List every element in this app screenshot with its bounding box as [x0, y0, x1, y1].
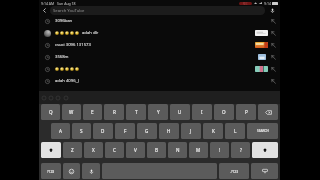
button[interactable]: W	[62, 104, 81, 120]
button[interactable]: Keyboard toolbar item	[47, 91, 54, 104]
staticText: SEARCH	[257, 129, 269, 133]
staticText: P	[245, 109, 248, 115]
button[interactable]: N	[168, 142, 187, 158]
button[interactable]: adah dlr	[39, 27, 280, 39]
staticText: ?123	[47, 169, 55, 174]
button[interactable]: .?123	[219, 163, 249, 179]
staticText: H	[167, 128, 171, 134]
button[interactable]: P	[236, 104, 256, 120]
button[interactable]: !	[210, 142, 229, 158]
staticText: S	[80, 128, 83, 134]
button[interactable]: Emoji	[63, 163, 80, 179]
button[interactable]: I	[192, 104, 212, 120]
staticText: .?123	[230, 169, 239, 174]
staticText: K	[212, 128, 215, 134]
staticText: !	[219, 147, 221, 153]
button[interactable]: Caps lock	[252, 142, 278, 158]
staticText: I	[201, 109, 203, 115]
button[interactable]: J	[181, 123, 201, 139]
staticText: 9:14	[264, 1, 271, 6]
button[interactable]: Search YouTube	[50, 6, 265, 15]
button[interactable]: S	[72, 123, 91, 139]
button[interactable]: M	[189, 142, 208, 158]
button[interactable]: 3096ban	[39, 15, 280, 27]
button[interactable]: Backspace	[258, 104, 278, 120]
button[interactable]: B	[147, 142, 166, 158]
button[interactable]: Screen recording	[239, 2, 252, 5]
staticText: A	[59, 128, 62, 134]
staticText: ?	[240, 147, 242, 153]
button[interactable]: Keyboard toolbar item	[54, 91, 61, 104]
button[interactable]: SEARCH	[247, 123, 278, 139]
button[interactable]: D	[93, 123, 113, 139]
button[interactable]: Keyboard toolbar item	[61, 91, 70, 104]
staticText: D	[101, 128, 105, 134]
staticText: V	[134, 147, 137, 153]
button[interactable]: O	[214, 104, 234, 120]
button[interactable]: Insert suggestion into search box	[266, 15, 280, 27]
staticText: Y	[157, 109, 160, 115]
button[interactable]: Insert suggestion into search box	[266, 63, 280, 75]
button[interactable]: K	[203, 123, 223, 139]
button[interactable]: A	[51, 123, 70, 139]
staticText: T	[135, 109, 138, 115]
button[interactable]: Q	[41, 104, 60, 120]
staticText: Sun Aug 18	[57, 1, 76, 6]
button[interactable]: X	[84, 142, 103, 158]
button[interactable]: Voice search	[265, 5, 280, 16]
staticText: X	[92, 147, 95, 153]
button[interactable]: adah 4096_J	[39, 75, 280, 87]
button[interactable]: G	[137, 123, 157, 139]
button[interactable]: V	[126, 142, 145, 158]
staticText: U	[178, 109, 182, 115]
staticText: F	[124, 128, 127, 134]
staticText: L	[234, 128, 237, 134]
staticText: M	[196, 147, 201, 153]
button[interactable]: Shift	[41, 142, 61, 158]
button[interactable]: T	[126, 104, 146, 120]
staticText: O	[222, 109, 226, 115]
button[interactable]: Voice input	[82, 163, 100, 179]
button[interactable]: Z	[63, 142, 82, 158]
staticText: 9:14 AM	[41, 1, 55, 6]
button[interactable]: E	[83, 104, 102, 120]
button[interactable]: Hide keyboard	[251, 163, 278, 179]
staticText: B	[155, 147, 158, 153]
staticText: E	[91, 109, 94, 115]
button[interactable]: ?123	[41, 163, 61, 179]
staticText: J	[190, 128, 192, 134]
button[interactable]: Back	[39, 5, 50, 16]
button[interactable]: Insert suggestion into search box	[266, 39, 280, 51]
staticText: G	[145, 128, 149, 134]
staticText: R	[113, 109, 116, 115]
staticText: Q	[49, 109, 53, 115]
staticText: 3568m	[55, 54, 69, 60]
staticText: N	[176, 147, 180, 153]
button[interactable]: Insert suggestion into search box	[39, 63, 280, 75]
button[interactable]: F	[115, 123, 135, 139]
button[interactable]: H	[159, 123, 179, 139]
staticText: Z	[71, 147, 74, 153]
button[interactable]: Insert suggestion into search box	[266, 51, 280, 63]
staticText: csuci 3096 131573	[55, 42, 91, 48]
button[interactable]: 3568m	[39, 51, 280, 63]
staticText: adah 4096_J	[55, 78, 79, 84]
staticText: Search YouTube	[53, 8, 85, 14]
button[interactable]: Keyboard toolbar item	[40, 91, 47, 104]
button[interactable]: C	[105, 142, 124, 158]
button[interactable]: U	[170, 104, 190, 120]
staticText: 3096ban	[55, 18, 73, 24]
staticText: REC	[243, 2, 248, 5]
button[interactable]: csuci 3096 131573	[39, 39, 280, 51]
button[interactable]: R	[104, 104, 124, 120]
staticText: W	[69, 109, 74, 115]
staticText: C	[113, 147, 116, 153]
button[interactable]: Y	[148, 104, 168, 120]
button[interactable]: L	[225, 123, 245, 139]
button[interactable]: ?	[231, 142, 250, 158]
staticText: adah dlr	[82, 30, 99, 36]
button[interactable]: Insert suggestion into search box	[266, 27, 280, 39]
button[interactable]: Insert suggestion into search box	[266, 75, 280, 87]
